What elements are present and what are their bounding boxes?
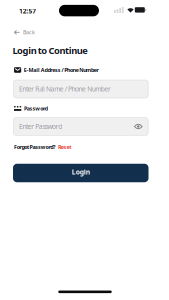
staticText: E-Mail Address / Phone Number bbox=[24, 66, 99, 74]
button[interactable]: E-Mail Address / Phone Number bbox=[13, 80, 148, 98]
staticText: Back bbox=[23, 29, 35, 36]
button[interactable]: Password bbox=[13, 117, 148, 136]
staticText: 12:57 bbox=[19, 7, 36, 15]
staticText: Enter Password bbox=[19, 122, 62, 131]
staticText: Enter Full Name / Phone Number bbox=[19, 85, 111, 93]
button[interactable]: Reset bbox=[58, 143, 71, 151]
staticText: Password bbox=[24, 105, 48, 112]
staticText: Login to Continue bbox=[12, 44, 88, 57]
button[interactable]: Back bbox=[14, 29, 35, 36]
staticText: Forgot Password? bbox=[14, 143, 56, 151]
staticText: Reset bbox=[58, 143, 71, 151]
staticText: Login bbox=[72, 167, 90, 176]
button[interactable]: Login bbox=[13, 164, 148, 182]
